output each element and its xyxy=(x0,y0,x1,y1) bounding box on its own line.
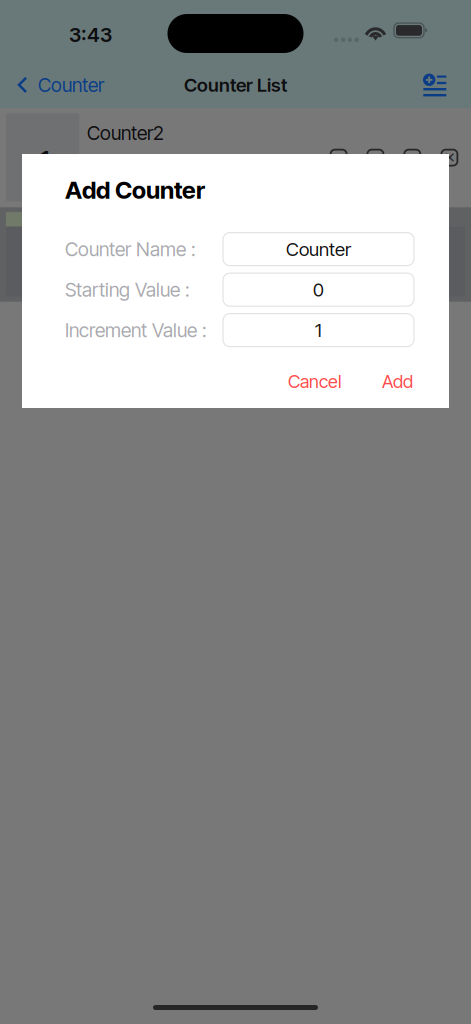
staticText: 1 xyxy=(315,319,322,341)
staticText: ✓ xyxy=(406,149,418,166)
button[interactable]: Counter control xyxy=(331,150,347,166)
button[interactable]: 1 xyxy=(223,314,414,347)
button[interactable]: Cancel xyxy=(277,363,352,400)
button[interactable]: Counter xyxy=(0,63,114,107)
staticText: Counter List xyxy=(184,74,287,96)
staticText: Counter Name : xyxy=(65,237,196,261)
staticText: Counter2 xyxy=(87,121,164,145)
staticText: 0 xyxy=(313,278,324,301)
staticText: Counter xyxy=(286,238,351,260)
staticText: Starting Value : xyxy=(65,278,190,301)
button[interactable]: Counter2 xyxy=(87,125,287,141)
staticText: Counter xyxy=(38,73,104,97)
staticText: Add Counter xyxy=(65,176,205,205)
staticText: Cancel xyxy=(288,371,341,392)
staticText: ✕ xyxy=(443,149,455,166)
staticText: Add xyxy=(382,371,413,392)
staticText: Increment Value : xyxy=(65,318,207,342)
button[interactable]: 0 xyxy=(223,273,414,306)
staticText: + xyxy=(334,149,343,166)
button[interactable]: Counter control xyxy=(404,150,420,166)
button[interactable]: Add counter xyxy=(409,66,471,104)
button[interactable]: Counter control xyxy=(441,150,457,166)
button[interactable] xyxy=(0,207,471,302)
button[interactable]: Counter xyxy=(223,233,414,266)
staticText: 1 xyxy=(38,142,50,184)
staticText: – xyxy=(372,149,379,166)
button[interactable]: Counter control xyxy=(367,150,383,166)
button[interactable]: Add xyxy=(371,363,424,400)
staticText: 3:43 xyxy=(69,22,112,47)
